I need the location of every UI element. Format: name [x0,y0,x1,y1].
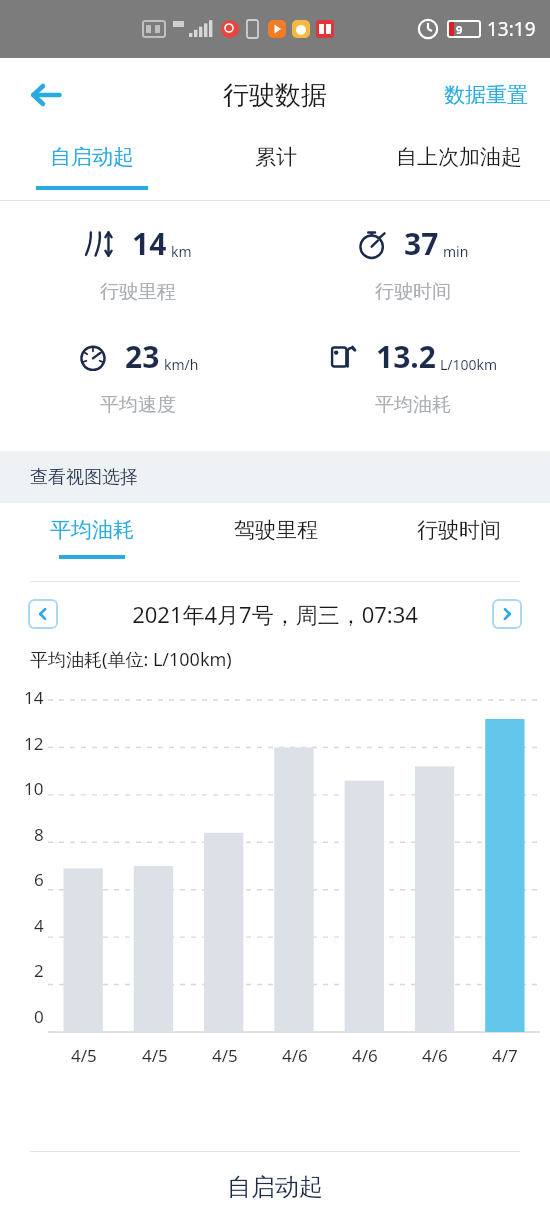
staticText: 驾驶里程 [234,517,318,543]
staticText: 累计 [255,144,297,170]
staticText: 4/6 [352,1044,378,1067]
staticText: 自启动起 [50,144,134,170]
button[interactable]: 数据重置 [436,74,536,116]
button[interactable]: 14 [0,223,275,304]
staticText: 12 [24,732,44,755]
staticText: 4/7 [492,1044,518,1067]
staticText: 平均油耗 [375,393,451,417]
button[interactable]: 自上次加油起 [367,132,550,200]
button[interactable]: 驾驶里程 [184,503,367,575]
staticText: 平均油耗(单位: L/100km) [30,647,232,672]
staticText: 4 [34,914,44,937]
button[interactable]: 13.2 [275,336,550,417]
button[interactable]: 行驶时间 [367,503,550,575]
staticText: 13.2 [376,336,436,377]
staticText: L/100km [440,355,498,374]
staticText: 行驶数据 [223,79,327,112]
button[interactable]: 累计 [184,132,367,200]
staticText: 行驶时间 [375,280,451,304]
button[interactable]: Previous [28,599,58,629]
staticText: 14 [132,223,167,264]
button[interactable]: 23 [0,336,275,417]
staticText: 2 [34,959,44,982]
staticText: 0 [34,1005,44,1028]
staticText: km/h [164,355,199,374]
staticText: 6 [34,868,44,891]
staticText: 4/6 [282,1044,308,1067]
staticText: 平均速度 [100,393,176,417]
button[interactable]: Next [492,599,522,629]
staticText: 自启动起 [227,1172,323,1202]
staticText: 4/6 [422,1044,448,1067]
staticText: 23 [125,336,160,377]
staticText: min [443,242,469,261]
staticText: 查看视图选择 [30,466,138,489]
button[interactable]: Back [20,69,72,121]
button[interactable]: 自启动起 [0,132,184,200]
button[interactable]: 平均油耗 [0,503,184,575]
staticText: 数据重置 [444,82,528,108]
staticText: 13:19 [487,16,536,42]
staticText: 4/5 [142,1044,168,1067]
staticText: 4/5 [71,1044,97,1067]
staticText: 自上次加油起 [396,144,522,170]
staticText: 8 [34,823,44,846]
staticText: 37 [404,223,439,264]
staticText: km [171,242,192,261]
button[interactable]: 自启动起 [0,1152,550,1222]
staticText: 4/5 [212,1044,238,1067]
staticText: 平均油耗 [50,517,134,543]
staticText: 行驶里程 [100,280,176,304]
staticText: 行驶时间 [417,517,501,543]
staticText: 9 [456,22,463,36]
button[interactable]: 37 [275,223,550,304]
staticText: 14 [24,686,44,709]
staticText: 10 [24,777,44,800]
staticText: 2021年4月7号，周三，07:34 [58,599,492,629]
